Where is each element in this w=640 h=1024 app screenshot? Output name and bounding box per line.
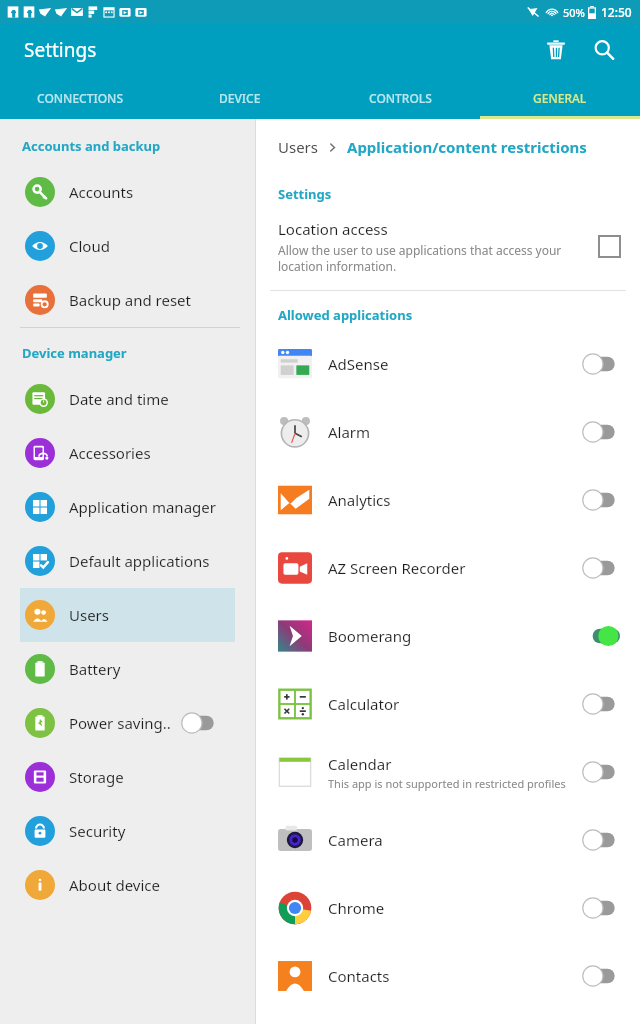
button[interactable]	[582, 761, 620, 783]
staticText: Alarm	[328, 422, 371, 442]
button[interactable]: About device	[20, 858, 235, 912]
button[interactable]: AdSense	[256, 330, 640, 398]
staticText: Backup and reset	[69, 290, 191, 310]
staticText: Settings	[24, 37, 97, 63]
button[interactable]: Power saving..	[20, 696, 235, 750]
staticText: Calendar	[328, 754, 392, 774]
button[interactable]: Location access	[256, 219, 640, 274]
button[interactable]	[582, 965, 620, 987]
button[interactable]: CONNECTIONS	[0, 76, 160, 119]
staticText: Allowed applications	[278, 306, 413, 324]
staticText: Calculator	[328, 694, 400, 714]
button[interactable]	[582, 625, 620, 647]
button[interactable]: Calendar	[256, 738, 640, 806]
staticText: Camera	[328, 830, 383, 850]
button[interactable]: Application/content restrictions	[347, 137, 587, 157]
button[interactable]: Calculator	[256, 670, 640, 738]
staticText: Default applications	[69, 551, 210, 571]
button[interactable]: DEVICE	[160, 76, 320, 119]
button[interactable]: Analytics	[256, 466, 640, 534]
staticText: Accounts	[69, 182, 134, 202]
staticText: Contacts	[328, 966, 390, 986]
staticText: Location access	[278, 219, 388, 239]
button[interactable]: Battery	[20, 642, 235, 696]
button[interactable]: GENERAL	[480, 76, 640, 119]
button[interactable]: Delete	[532, 26, 580, 74]
button[interactable]: Boomerang	[256, 602, 640, 670]
staticText: Date and time	[69, 389, 169, 409]
staticText: Cloud	[69, 236, 110, 256]
button[interactable]: Application manager	[20, 480, 235, 534]
staticText: GENERAL	[533, 90, 587, 106]
staticText: 12:50	[601, 4, 632, 20]
button[interactable]: Storage	[20, 750, 235, 804]
staticText: AZ Screen Recorder	[328, 558, 466, 578]
staticText: DEVICE	[219, 90, 261, 106]
button[interactable]: Backup and reset	[20, 273, 235, 327]
button[interactable]: Accounts	[20, 165, 235, 219]
button[interactable]: Camera	[256, 806, 640, 874]
staticText: Accounts and backup	[22, 137, 161, 155]
button[interactable]: Accessories	[20, 426, 235, 480]
button[interactable]: Alarm	[256, 398, 640, 466]
staticText: Allow the user to use applications that …	[278, 242, 587, 274]
button[interactable]: Security	[20, 804, 235, 858]
staticText: Analytics	[328, 490, 391, 510]
button[interactable]	[582, 829, 620, 851]
button[interactable]: Date and time	[20, 372, 235, 426]
staticText: Application manager	[69, 497, 216, 517]
staticText: Device manager	[22, 344, 127, 362]
button[interactable]	[582, 897, 620, 919]
staticText: CONNECTIONS	[37, 90, 124, 106]
button[interactable]: Chrome	[256, 874, 640, 942]
staticText: Storage	[69, 767, 124, 787]
staticText: Boomerang	[328, 626, 412, 646]
staticText: Battery	[69, 659, 121, 679]
staticText: Settings	[278, 185, 332, 203]
staticText: Security	[69, 821, 126, 841]
staticText: AdSense	[328, 354, 389, 374]
button[interactable]: Users	[20, 588, 235, 642]
button[interactable]: AZ Screen Recorder	[256, 534, 640, 602]
button[interactable]: Contacts	[256, 942, 640, 1010]
button[interactable]: Search	[580, 26, 628, 74]
button[interactable]	[582, 557, 620, 579]
button[interactable]: Cloud	[20, 219, 235, 273]
staticText: CONTROLS	[369, 90, 432, 106]
button[interactable]: CONTROLS	[320, 76, 480, 119]
button[interactable]: Users	[278, 137, 318, 157]
staticText: This app is not supported in restricted …	[328, 776, 566, 791]
staticText: Power saving..	[69, 713, 171, 733]
button[interactable]	[582, 489, 620, 511]
button[interactable]: Location access checkbox	[599, 236, 620, 257]
button[interactable]	[181, 712, 219, 734]
staticText: About device	[69, 875, 161, 895]
staticText: Accessories	[69, 443, 151, 463]
button[interactable]: Default applications	[20, 534, 235, 588]
button[interactable]	[582, 353, 620, 375]
button[interactable]	[582, 693, 620, 715]
staticText: 50%	[563, 5, 585, 20]
button[interactable]	[582, 421, 620, 443]
staticText: Users	[69, 605, 109, 625]
staticText: Chrome	[328, 898, 385, 918]
